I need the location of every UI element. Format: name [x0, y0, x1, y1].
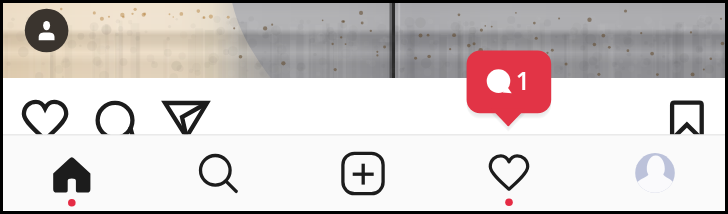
button[interactable]: Share [159, 98, 213, 134]
button[interactable]: Profile photo [25, 8, 77, 60]
button[interactable]: Activity [436, 135, 582, 211]
button[interactable]: 1 new comment [462, 48, 556, 130]
button[interactable]: Home [0, 135, 145, 211]
button[interactable]: Profile [582, 135, 728, 211]
staticText: 1 [513, 63, 533, 97]
button[interactable]: Save [666, 98, 710, 134]
button[interactable]: Search [145, 135, 290, 211]
button[interactable]: Comment [90, 98, 142, 134]
button[interactable]: New post [290, 135, 436, 211]
button[interactable]: Like [18, 98, 70, 134]
